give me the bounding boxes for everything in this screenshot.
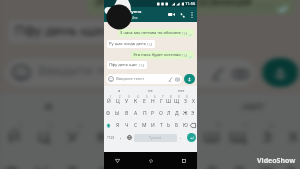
button[interactable]: Й bbox=[104, 95, 113, 107]
button[interactable]: К bbox=[87, 119, 117, 154]
button[interactable]: Enter bbox=[187, 133, 196, 142]
staticText: Щ bbox=[229, 128, 249, 148]
button[interactable]: Back bbox=[106, 11, 114, 19]
staticText: Щ bbox=[174, 98, 180, 105]
button[interactable]: Т bbox=[157, 119, 165, 131]
button[interactable]: Backspace bbox=[189, 119, 197, 131]
button[interactable]: Е bbox=[140, 95, 149, 107]
button[interactable]: . bbox=[177, 131, 185, 144]
staticText: 11:5 bbox=[182, 54, 188, 58]
button[interactable]: А bbox=[131, 107, 140, 119]
button[interactable]: З bbox=[252, 119, 279, 154]
button[interactable]: Ь bbox=[165, 119, 173, 131]
button[interactable]: П bbox=[117, 154, 147, 169]
staticText: Э bbox=[285, 162, 298, 169]
button[interactable]: Эта ночь будет осенная bbox=[87, 0, 295, 15]
button[interactable]: И bbox=[149, 119, 157, 131]
button[interactable]: Р bbox=[147, 154, 173, 169]
button[interactable]: Video call bbox=[166, 9, 177, 20]
button[interactable]: Recent apps bbox=[178, 155, 189, 166]
button[interactable]: В bbox=[122, 107, 131, 119]
button[interactable]: Ф bbox=[0, 154, 28, 169]
button[interactable]: Home bbox=[145, 155, 156, 166]
button[interactable]: Х bbox=[279, 119, 300, 154]
staticText: Л bbox=[206, 162, 219, 169]
button[interactable]: Record voice message bbox=[184, 74, 195, 84]
button[interactable]: Space bbox=[134, 134, 177, 142]
button[interactable]: , bbox=[117, 131, 125, 144]
button[interactable]: Г bbox=[173, 119, 199, 154]
button[interactable]: Щ bbox=[226, 119, 252, 154]
staticText: Ц bbox=[38, 128, 51, 148]
button[interactable]: Н bbox=[147, 119, 173, 154]
staticText: Е bbox=[127, 128, 137, 148]
button[interactable]: Ы bbox=[113, 107, 122, 119]
button[interactable]: Е bbox=[117, 119, 147, 154]
button[interactable]: я bbox=[104, 86, 135, 95]
button[interactable]: О bbox=[157, 107, 165, 119]
button[interactable]: ?123 bbox=[104, 131, 117, 144]
button[interactable]: Ш bbox=[199, 119, 226, 154]
button[interactable]: Р bbox=[149, 107, 157, 119]
button[interactable]: Shift bbox=[104, 119, 113, 131]
staticText: Ф bbox=[5, 162, 21, 169]
button[interactable]: Ру щас когда день bbox=[107, 40, 155, 48]
button[interactable]: Ч bbox=[122, 119, 131, 131]
button[interactable]: Ж bbox=[181, 107, 189, 119]
button[interactable]: Б bbox=[173, 119, 181, 131]
button[interactable]: не bbox=[135, 86, 166, 95]
button[interactable]: Record voice message bbox=[262, 58, 298, 87]
button[interactable]: Й bbox=[0, 119, 28, 154]
button[interactable]: У bbox=[122, 95, 131, 107]
button[interactable]: Ц bbox=[28, 119, 58, 154]
button[interactable]: В bbox=[58, 154, 87, 169]
button[interactable]: Введите текст bbox=[5, 58, 256, 87]
button[interactable]: Д bbox=[226, 154, 252, 169]
button[interactable]: Х bbox=[189, 95, 197, 107]
staticText: вы, Аня bbox=[127, 16, 138, 20]
button[interactable]: А bbox=[87, 154, 117, 169]
button[interactable]: Back bbox=[112, 155, 123, 166]
button[interactable]: П bbox=[140, 107, 149, 119]
staticText: Ф bbox=[106, 110, 111, 117]
button[interactable]: З часа мы летним по обочине bbox=[118, 29, 194, 37]
button[interactable]: Change language bbox=[125, 131, 134, 144]
button[interactable]: М bbox=[140, 119, 149, 131]
button[interactable]: Пфу день щас bbox=[107, 61, 147, 69]
button[interactable]: Ц bbox=[113, 95, 122, 107]
staticText: 11:5 bbox=[182, 32, 188, 36]
button[interactable]: Э bbox=[279, 154, 300, 169]
button[interactable]: Пфу день щас bbox=[8, 20, 140, 44]
staticText: ?123 bbox=[107, 135, 115, 140]
button[interactable]: Я bbox=[113, 119, 122, 131]
button[interactable]: Ж bbox=[252, 154, 279, 169]
button[interactable]: нет bbox=[203, 93, 300, 119]
button[interactable]: не bbox=[100, 93, 203, 119]
button[interactable]: Н bbox=[149, 95, 157, 107]
button[interactable]: Л bbox=[199, 154, 226, 169]
button[interactable]: О bbox=[173, 154, 199, 169]
button[interactable]: Щ bbox=[173, 95, 181, 107]
staticText: . bbox=[180, 134, 182, 141]
button[interactable]: Ю bbox=[181, 119, 189, 131]
button[interactable]: С bbox=[131, 119, 140, 131]
staticText: я bbox=[44, 99, 54, 113]
button[interactable]: У bbox=[58, 119, 87, 154]
button[interactable]: К bbox=[131, 95, 140, 107]
button[interactable]: Эта ночь будет осенная bbox=[131, 51, 194, 59]
button[interactable]: Л bbox=[165, 107, 173, 119]
button[interactable]: Э bbox=[189, 107, 197, 119]
button[interactable]: Введите текст bbox=[106, 74, 182, 84]
button[interactable]: нет bbox=[166, 86, 197, 95]
button[interactable]: Ф bbox=[104, 107, 113, 119]
button[interactable]: З bbox=[181, 95, 189, 107]
button[interactable]: Г bbox=[157, 95, 165, 107]
button[interactable]: More options bbox=[187, 10, 196, 19]
button[interactable]: Д bbox=[173, 107, 181, 119]
button[interactable]: Ш bbox=[165, 95, 173, 107]
button[interactable]: Call bbox=[177, 10, 187, 20]
